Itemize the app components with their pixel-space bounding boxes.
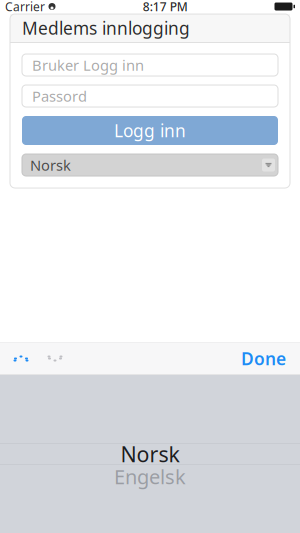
staticText: Bruker Logg inn xyxy=(32,55,144,75)
button[interactable]: Engelsk xyxy=(0,465,300,488)
staticText: Norsk xyxy=(120,440,179,468)
button[interactable]: Previous field xyxy=(4,342,38,374)
staticText: Medlems innlogging xyxy=(22,16,190,39)
button[interactable]: Done xyxy=(231,342,296,374)
button[interactable]: Logg inn xyxy=(22,116,278,145)
staticText: Engelsk xyxy=(114,463,186,490)
staticText: Passord xyxy=(32,86,87,106)
staticText: Logg inn xyxy=(114,119,186,142)
button[interactable]: Norsk xyxy=(22,154,278,176)
button[interactable]: Norsk xyxy=(0,443,300,464)
button[interactable]: Next field xyxy=(38,342,72,374)
staticText: 8:17 PM xyxy=(143,0,188,14)
staticText: Carrier xyxy=(5,0,45,14)
staticText: Done xyxy=(241,347,286,370)
staticText: Norsk xyxy=(30,155,71,175)
